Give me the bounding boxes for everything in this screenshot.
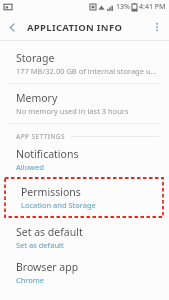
staticText: APP SETTINGS xyxy=(16,132,65,141)
staticText: No memory used in last 3 hours xyxy=(16,106,129,116)
staticText: Chrome xyxy=(16,275,45,285)
button[interactable]: Browser app xyxy=(0,254,169,289)
staticText: Storage xyxy=(16,51,55,65)
button[interactable]: Storage xyxy=(0,47,169,82)
staticText: Permissions xyxy=(21,185,81,199)
staticText: Memory xyxy=(16,91,58,105)
button[interactable]: Permissions xyxy=(5,178,163,217)
button[interactable]: Navigate up xyxy=(0,15,24,39)
button[interactable]: Notifications xyxy=(0,144,169,176)
staticText: Notifications xyxy=(16,147,79,161)
button[interactable]: Set as default xyxy=(0,219,169,254)
staticText: 13% xyxy=(116,2,130,12)
staticText: Allowed xyxy=(16,162,44,172)
staticText: Set as default xyxy=(16,225,83,239)
button[interactable]: More options xyxy=(145,15,169,39)
staticText: Set as default xyxy=(16,240,64,250)
staticText: 4:41 PM xyxy=(139,2,166,12)
staticText: 177 MB/32.00 GB of internal storage used xyxy=(16,66,157,76)
staticText: APPLICATION INFO xyxy=(27,21,123,34)
staticText: Location and Storage xyxy=(21,200,96,210)
button[interactable]: Memory xyxy=(0,84,169,122)
staticText: Browser app xyxy=(16,260,79,274)
